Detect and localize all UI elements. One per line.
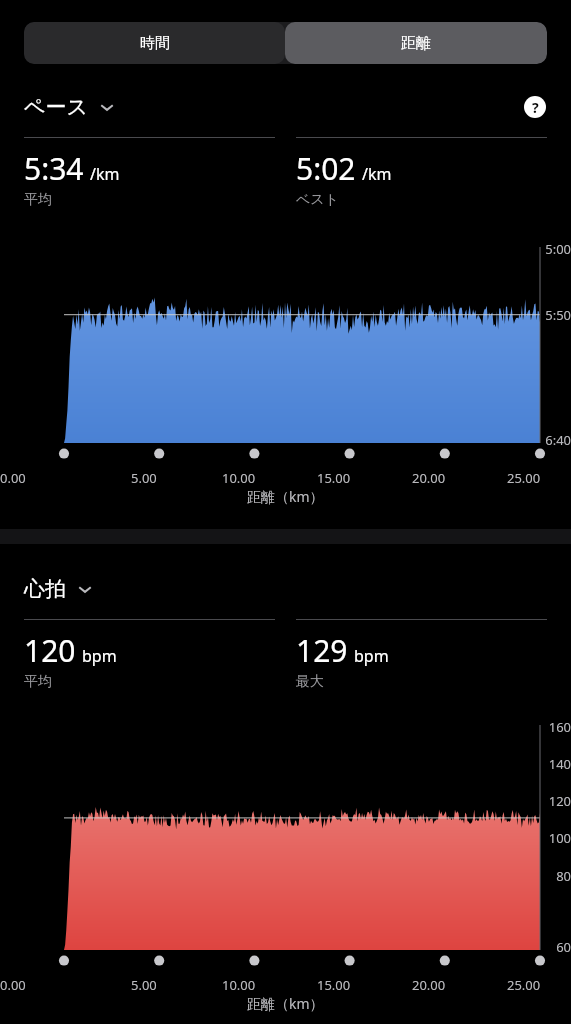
staticText: 15.00 xyxy=(317,976,351,994)
staticText: 10.00 xyxy=(222,976,256,994)
staticText: 平均 xyxy=(24,191,52,209)
button[interactable]: 129 xyxy=(296,619,547,691)
staticText: 平均 xyxy=(24,673,52,691)
staticText: 100 xyxy=(519,829,571,847)
staticText: 5.00 xyxy=(131,469,157,487)
staticText: 0.00 xyxy=(0,976,26,994)
staticText: 120 xyxy=(519,792,571,810)
button[interactable]: 距離 xyxy=(285,22,547,64)
staticText: 心拍 xyxy=(24,576,66,602)
staticText: 5.00 xyxy=(131,976,157,994)
staticText: 10.00 xyxy=(222,469,256,487)
staticText: 25.00 xyxy=(507,976,541,994)
staticText: 距離（km） xyxy=(247,487,324,506)
staticText: 20.00 xyxy=(412,976,446,994)
staticText: 129 xyxy=(296,630,348,671)
staticText: /km xyxy=(362,163,392,185)
staticText: /km xyxy=(90,163,120,185)
button[interactable]: 5:34 xyxy=(24,137,275,209)
staticText: ペース xyxy=(24,94,88,120)
staticText: 15.00 xyxy=(317,469,351,487)
staticText: 20.00 xyxy=(412,469,446,487)
staticText: 140 xyxy=(519,755,571,773)
staticText: ? xyxy=(532,98,539,117)
staticText: 時間 xyxy=(140,34,170,53)
staticText: bpm xyxy=(82,645,117,667)
staticText: 60 xyxy=(519,938,571,956)
staticText: ベスト xyxy=(296,191,339,209)
staticText: 5:00 xyxy=(519,240,571,258)
staticText: 0.00 xyxy=(0,469,26,487)
staticText: 25.00 xyxy=(507,469,541,487)
staticText: 距離（km） xyxy=(247,994,324,1013)
staticText: 5:34 xyxy=(24,148,84,189)
staticText: 120 xyxy=(24,630,76,671)
button[interactable]: 心拍 xyxy=(24,576,94,602)
button[interactable]: ペース xyxy=(24,94,116,120)
staticText: 距離 xyxy=(401,34,431,53)
staticText: 5:50 xyxy=(519,306,571,324)
button[interactable]: 5:02 xyxy=(296,137,547,209)
staticText: 160 xyxy=(519,718,571,736)
button[interactable]: ヘルプ xyxy=(519,91,551,123)
button[interactable]: 時間 xyxy=(24,22,285,64)
staticText: 6:40 xyxy=(519,431,571,449)
staticText: bpm xyxy=(354,645,389,667)
staticText: 最大 xyxy=(296,673,324,691)
staticText: 5:02 xyxy=(296,148,356,189)
button[interactable]: 120 xyxy=(24,619,275,691)
staticText: 80 xyxy=(519,867,571,885)
